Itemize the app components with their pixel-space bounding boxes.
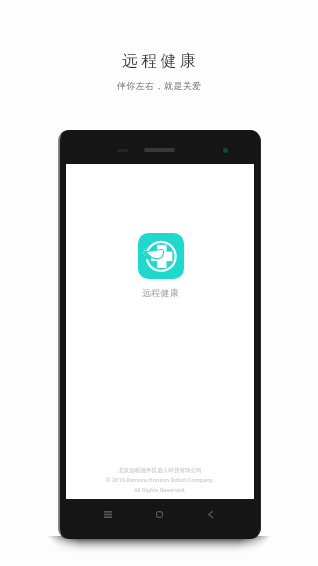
staticText: © 2016 Remote Horizon Robot Company.	[106, 476, 214, 484]
staticText: All Rights Reserved.	[134, 486, 186, 494]
staticText: 远程健康	[122, 51, 200, 71]
staticText: 远程健康	[142, 288, 180, 299]
button[interactable]: Back	[190, 501, 231, 528]
button[interactable]: Home	[139, 501, 180, 528]
staticText: 伴你左右，就是关爱	[117, 80, 202, 91]
staticText: 北京远程视界机器人科技有限公司	[118, 467, 202, 474]
button[interactable]: Recents	[87, 501, 128, 528]
